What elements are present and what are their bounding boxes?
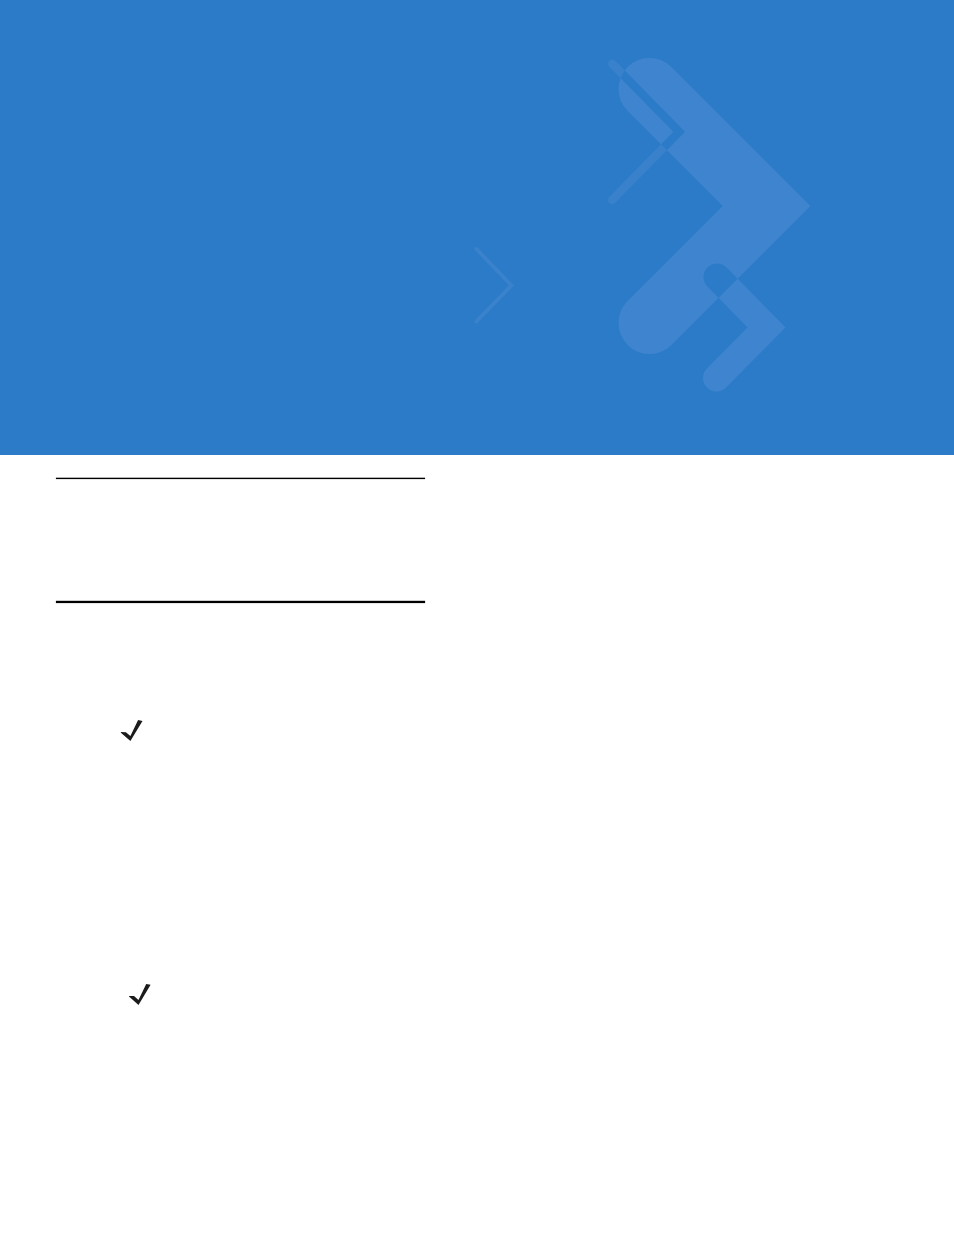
button[interactable]: App logo banner <box>0 0 954 455</box>
button[interactable]: Checked item 1 <box>112 710 152 750</box>
button[interactable]: Checked item 2 <box>120 974 160 1014</box>
